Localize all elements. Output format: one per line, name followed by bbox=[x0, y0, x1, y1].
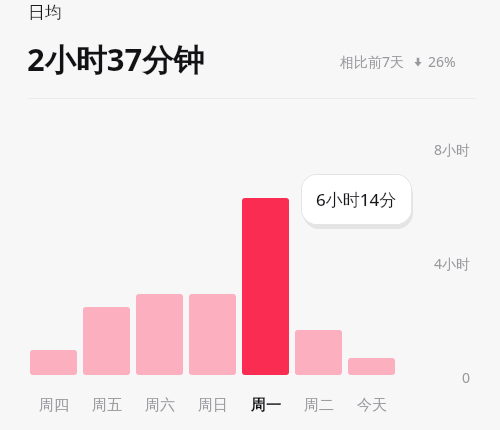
button[interactable]: 周一 bbox=[236, 393, 295, 417]
staticText: 26% bbox=[428, 52, 456, 71]
staticText: 4小时 bbox=[433, 254, 470, 273]
button[interactable]: 相比前7天 bbox=[340, 52, 456, 71]
staticText: 2小时37分钟 bbox=[27, 38, 205, 80]
button[interactable]: 周日 bbox=[183, 393, 242, 417]
staticText: 周四 bbox=[39, 396, 69, 415]
button[interactable]: 6小时14分 bbox=[301, 174, 412, 225]
button[interactable]: 周五 bbox=[77, 393, 136, 417]
staticText: 0 bbox=[461, 368, 470, 387]
staticText: 6小时14分 bbox=[316, 188, 397, 211]
button[interactable] bbox=[295, 330, 342, 375]
button[interactable]: 周六 bbox=[130, 393, 189, 417]
button[interactable] bbox=[242, 198, 289, 375]
staticText: 日均 bbox=[28, 2, 62, 23]
button[interactable]: 周二 bbox=[289, 393, 348, 417]
button[interactable]: 今天 bbox=[342, 393, 401, 417]
staticText: 相比前7天 bbox=[340, 52, 405, 71]
staticText: 周五 bbox=[92, 396, 122, 415]
staticText: 周六 bbox=[145, 396, 175, 415]
button[interactable] bbox=[30, 350, 77, 375]
button[interactable]: 周四 bbox=[24, 393, 83, 417]
staticText: 周一 bbox=[251, 396, 281, 415]
staticText: 今天 bbox=[357, 396, 387, 415]
staticText: 周二 bbox=[304, 396, 334, 415]
staticText: 周日 bbox=[198, 396, 228, 415]
button[interactable] bbox=[348, 358, 395, 375]
staticText: 8小时 bbox=[433, 140, 470, 159]
other: Decrease bbox=[411, 55, 425, 69]
